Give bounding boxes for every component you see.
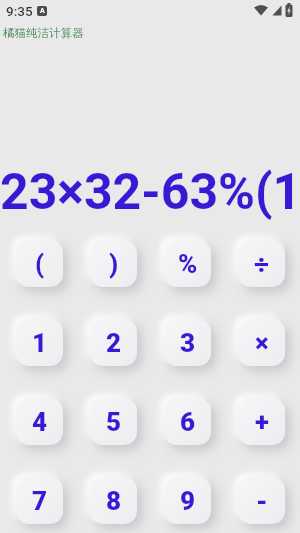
button[interactable]: ( (16, 240, 63, 287)
staticText: 8 (106, 486, 122, 516)
staticText: 5 (106, 407, 122, 437)
staticText: ) (109, 249, 119, 279)
staticText: 9:35 (6, 3, 33, 19)
staticText: × (255, 328, 269, 358)
button[interactable]: × (238, 319, 285, 366)
staticText: - (256, 486, 268, 516)
staticText: 1 (32, 328, 48, 358)
staticText: A (40, 7, 45, 15)
button[interactable]: 2 (90, 319, 137, 366)
button[interactable]: - (238, 477, 285, 524)
button[interactable]: 8 (90, 477, 137, 524)
staticText: 7 (32, 486, 48, 516)
button[interactable]: % (164, 240, 211, 287)
button[interactable]: 3 (164, 319, 211, 366)
staticText: ( (35, 249, 45, 279)
button[interactable]: ) (90, 240, 137, 287)
button[interactable]: 6 (164, 398, 211, 445)
staticText: 6 (180, 407, 196, 437)
staticText: 2 (106, 328, 122, 358)
staticText: + (255, 407, 269, 437)
button[interactable]: + (238, 398, 285, 445)
button[interactable]: 1 (16, 319, 63, 366)
button[interactable]: ÷ (238, 240, 285, 287)
staticText: ÷ (254, 249, 269, 279)
button[interactable]: 4 (16, 398, 63, 445)
button[interactable]: 9 (164, 477, 211, 524)
staticText: 23×32-63%(1 (0, 163, 300, 222)
staticText: 4 (32, 407, 48, 437)
button[interactable]: 7 (16, 477, 63, 524)
staticText: % (178, 249, 198, 279)
button[interactable]: 5 (90, 398, 137, 445)
staticText: 9 (180, 486, 196, 516)
staticText: 3 (180, 328, 196, 358)
staticText: 橘猫纯洁计算器 (3, 26, 84, 40)
